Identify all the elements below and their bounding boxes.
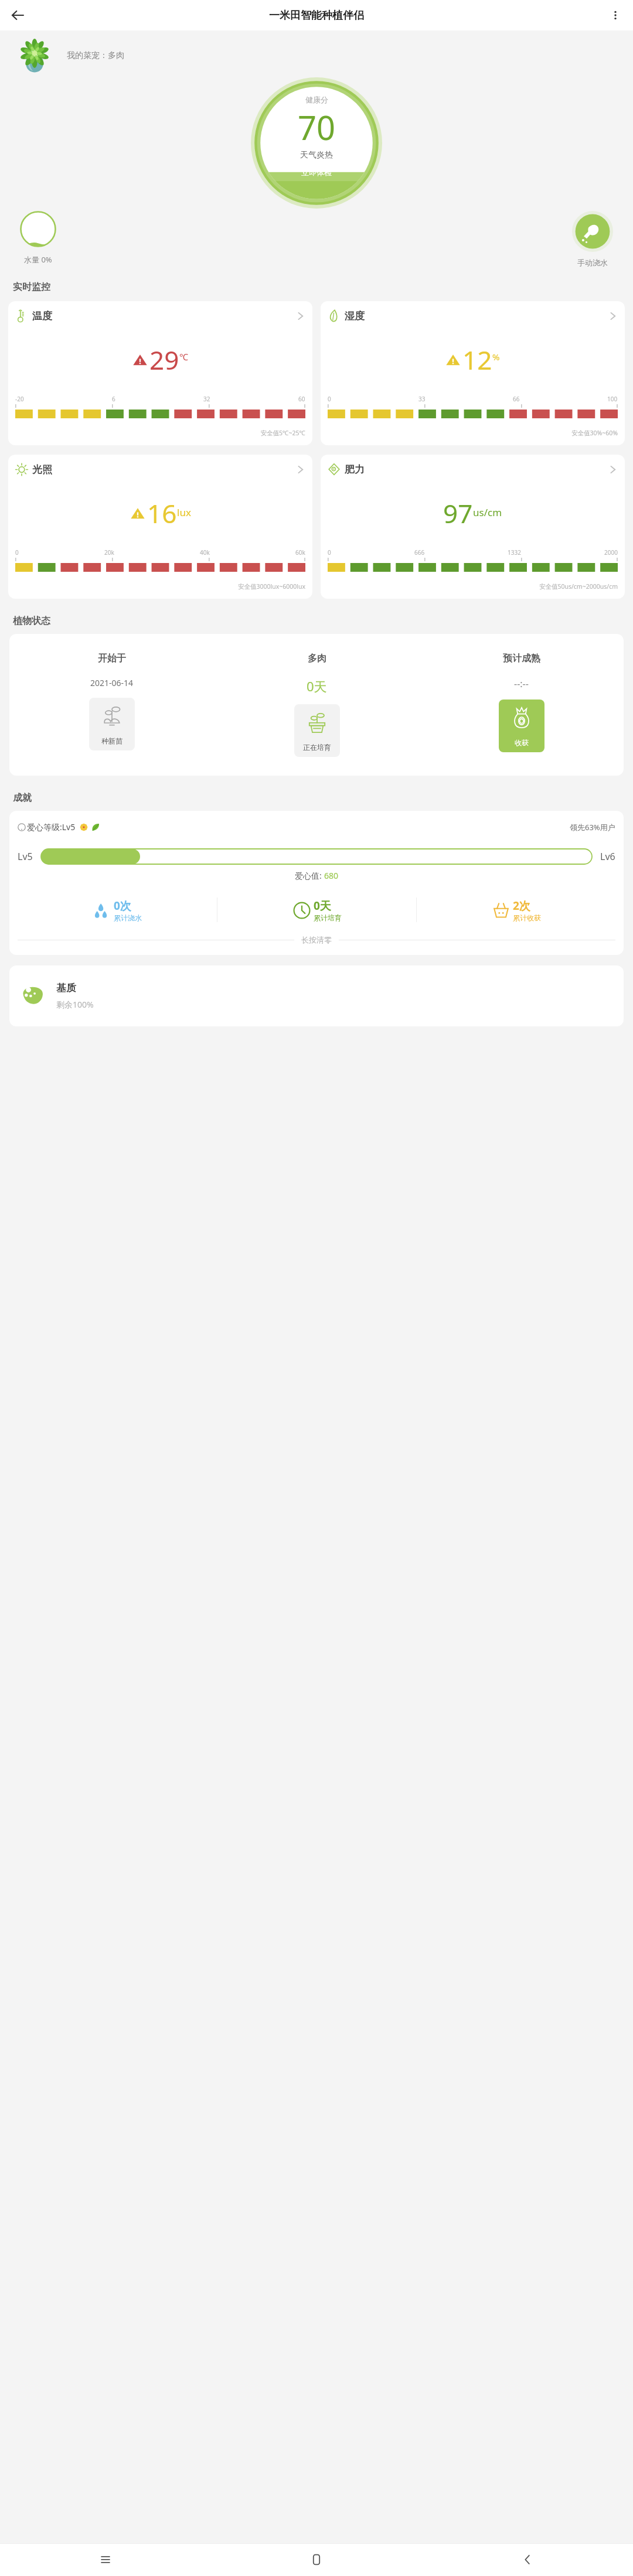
staticText: 680 — [324, 870, 339, 881]
staticText: Lv5 — [18, 850, 33, 863]
staticText: 安全值5℃~25℃ — [15, 429, 305, 437]
button[interactable]: 健康分 — [251, 77, 382, 209]
staticText: 收获 — [515, 738, 529, 747]
staticText: Lv6 — [600, 850, 615, 863]
button[interactable]: 0天 — [217, 898, 416, 922]
staticText: 肥力 — [345, 463, 365, 476]
staticText: 健康分 — [305, 95, 328, 104]
staticText: 领先63%用户 — [570, 822, 615, 832]
staticText: 累计浇水 — [114, 913, 142, 922]
button[interactable]: Back — [5, 2, 30, 28]
staticText: 97 — [443, 496, 473, 531]
staticText: 1332 — [508, 548, 521, 557]
staticText: 基质 — [56, 982, 76, 994]
button[interactable]: Back — [422, 2543, 633, 2576]
staticText: 60 — [298, 395, 305, 403]
staticText: 水量 0% — [24, 254, 52, 265]
button[interactable]: 基质 — [9, 965, 624, 1026]
staticText: 70 — [298, 105, 336, 149]
staticText: 累计培育 — [314, 913, 342, 922]
staticText: % — [492, 351, 500, 363]
staticText: 立即体检 — [301, 168, 332, 177]
staticText: 我的菜宠：多肉 — [67, 50, 124, 61]
staticText: 天气炎热 — [300, 150, 333, 161]
staticText: 成就 — [13, 792, 32, 804]
button[interactable]: 手动浇水 — [572, 211, 613, 267]
button[interactable]: 水量 0% — [20, 211, 56, 265]
staticText: 0 — [15, 548, 19, 557]
staticText: 安全值50us/cm~2000us/cm — [328, 582, 618, 591]
button[interactable]: 温度 — [8, 301, 312, 445]
staticText: 光照 — [32, 463, 52, 476]
staticText: 植物状态 — [13, 615, 50, 627]
staticText: 0天 — [307, 677, 327, 695]
staticText: --:-- — [514, 677, 529, 690]
button[interactable]: More options — [603, 2, 628, 28]
staticText: 种新苗 — [101, 736, 122, 745]
staticText: 20k — [104, 548, 114, 557]
staticText: 0 — [328, 548, 331, 557]
staticText: 0 — [328, 395, 331, 403]
staticText: 开始于 — [98, 653, 126, 664]
staticText: 32 — [203, 395, 210, 403]
button[interactable]: 光照 — [8, 455, 312, 599]
staticText: 66 — [513, 395, 520, 403]
button[interactable]: 2次 — [417, 898, 615, 922]
staticText: 累计收获 — [513, 913, 541, 922]
staticText: 爱心等级:Lv5 — [27, 821, 76, 832]
staticText: -20 — [15, 395, 24, 403]
staticText: 29 — [149, 342, 179, 377]
button[interactable]: 湿度 — [321, 301, 625, 445]
staticText: 多肉 — [308, 653, 326, 664]
staticText: 预计成熟 — [503, 653, 540, 664]
staticText: 12 — [462, 342, 492, 377]
staticText: ℃ — [179, 351, 188, 363]
staticText: 33 — [418, 395, 426, 403]
button[interactable]: 收获 — [499, 700, 544, 752]
button[interactable]: Recents — [0, 2543, 211, 2576]
staticText: 100 — [607, 395, 618, 403]
button[interactable]: Home — [211, 2543, 422, 2576]
button[interactable]: 0次 — [18, 898, 217, 922]
staticText: 2次 — [513, 898, 530, 913]
button[interactable]: 肥力 — [321, 455, 625, 599]
staticText: 2000 — [604, 548, 618, 557]
staticText: 一米田智能种植伴侣 — [269, 9, 364, 22]
staticText: 40k — [200, 548, 210, 557]
staticText: 手动浇水 — [577, 258, 608, 267]
staticText: 666 — [414, 548, 425, 557]
staticText: 60k — [295, 548, 305, 557]
staticText: us/cm — [473, 506, 502, 519]
button[interactable]: 种新苗 — [89, 698, 135, 750]
staticText: 正在培育 — [303, 743, 331, 752]
staticText: 6 — [112, 395, 115, 403]
staticText: 2021-06-14 — [90, 677, 134, 688]
button[interactable]: 正在培育 — [294, 704, 340, 757]
staticText: 安全值30%~60% — [328, 429, 618, 437]
staticText: lux — [177, 506, 191, 519]
staticText: 安全值3000lux~6000lux — [15, 582, 305, 591]
staticText: 温度 — [32, 310, 52, 322]
staticText: 长按清零 — [301, 935, 332, 944]
staticText: 剩余100% — [56, 999, 94, 1010]
staticText: 0天 — [314, 898, 331, 913]
staticText: 0次 — [114, 898, 131, 913]
staticText: 实时监控 — [13, 281, 50, 293]
staticText: 爱心值: — [295, 870, 324, 881]
staticText: 16 — [147, 496, 177, 531]
staticText: 湿度 — [345, 310, 365, 322]
